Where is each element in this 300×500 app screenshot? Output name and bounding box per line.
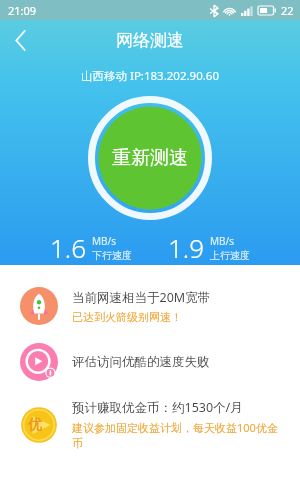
- staticText: 山西移动 IP:183.202.90.60: [0, 68, 300, 84]
- button[interactable]: 当前网速相当于20M宽带: [0, 283, 300, 329]
- staticText: 下行速度: [92, 249, 132, 262]
- staticText: 已达到火箭级别网速！: [72, 310, 182, 324]
- staticText: 网络测速: [116, 30, 184, 51]
- staticText: 重新测速: [112, 146, 188, 170]
- staticText: 预计赚取优金币：约1530个/月: [72, 399, 243, 416]
- staticText: MB/s: [92, 234, 117, 248]
- staticText: 当前网速相当于20M宽带: [72, 289, 211, 306]
- staticText: 上行速度: [210, 249, 250, 262]
- staticText: 1.9: [168, 230, 205, 265]
- button[interactable]: 评估访问优酷的速度失败: [0, 339, 300, 385]
- button[interactable]: 重新测速: [88, 96, 212, 220]
- staticText: 22: [281, 3, 294, 18]
- button[interactable]: 优: [0, 395, 300, 454]
- staticText: 建议参加固定收益计划，每天收益100优金币: [72, 420, 288, 450]
- staticText: MB/s: [210, 234, 235, 248]
- staticText: 优: [28, 416, 42, 434]
- staticText: 1.6: [50, 230, 87, 265]
- button[interactable]: Back: [0, 20, 40, 60]
- staticText: 评估访问优酷的速度失败: [72, 354, 210, 370]
- staticText: 21:09: [8, 3, 37, 18]
